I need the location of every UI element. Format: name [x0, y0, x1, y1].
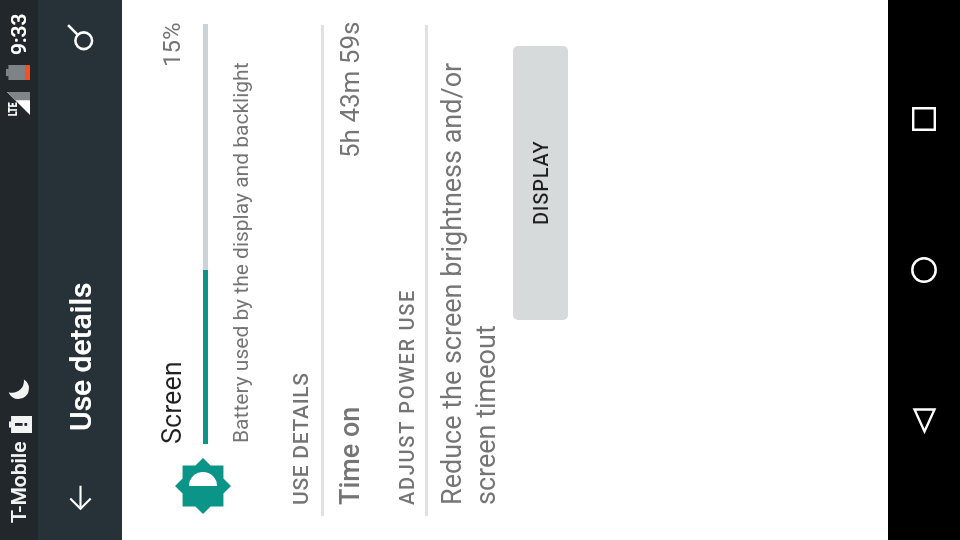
staticText: 15% [158, 22, 186, 67]
staticText: Reduce the screen brightness and/or scre… [436, 62, 502, 505]
button[interactable]: Back [900, 397, 948, 445]
button[interactable]: Home [900, 246, 948, 294]
staticText: Screen [156, 361, 188, 444]
button[interactable]: Recent apps [900, 95, 948, 143]
staticText: 9:33 [7, 13, 32, 55]
staticText: Time on [334, 406, 366, 505]
button[interactable]: Navigate up [52, 470, 108, 526]
staticText: T-Mobile [7, 441, 32, 523]
staticText: USE DETAILS [289, 372, 314, 505]
staticText: ADJUST POWER USE [395, 288, 418, 505]
staticText: Battery used by the display and backligh… [229, 62, 254, 443]
staticText: DISPLAY [529, 140, 552, 225]
staticText: LTE [5, 102, 20, 116]
staticText: Use details [63, 282, 98, 431]
staticText: 5h 43m 59s [335, 21, 365, 158]
button[interactable]: DISPLAY [513, 46, 568, 320]
button[interactable]: Search [52, 10, 108, 66]
